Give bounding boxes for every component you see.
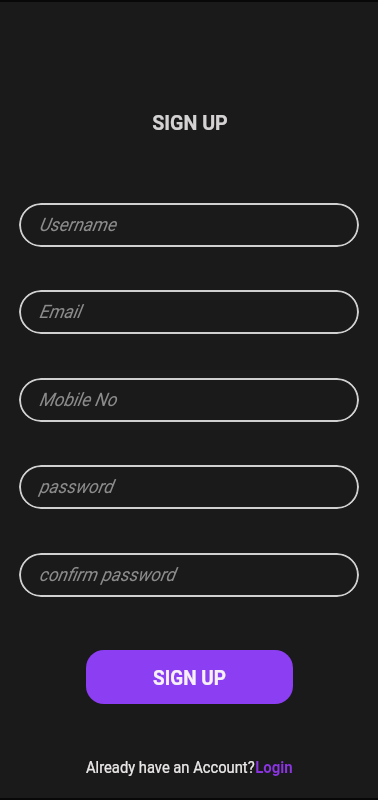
button[interactable]: Login xyxy=(255,758,293,777)
staticText: password xyxy=(39,476,114,498)
button[interactable]: password xyxy=(19,465,359,509)
staticText: SIGN UP xyxy=(152,111,229,135)
staticText: Login xyxy=(255,758,293,777)
button[interactable]: SIGN UP xyxy=(86,650,293,704)
staticText: Username xyxy=(39,214,116,236)
button[interactable]: Username xyxy=(19,203,359,247)
staticText: Mobile No xyxy=(39,389,116,411)
button[interactable]: Email xyxy=(19,290,359,334)
staticText: Already have an Account? xyxy=(86,759,255,777)
button[interactable]: Mobile No xyxy=(19,378,359,422)
staticText: confirm password xyxy=(39,564,175,586)
button[interactable]: confirm password xyxy=(19,553,359,597)
staticText: SIGN UP xyxy=(153,666,226,689)
staticText: Email xyxy=(39,301,81,323)
